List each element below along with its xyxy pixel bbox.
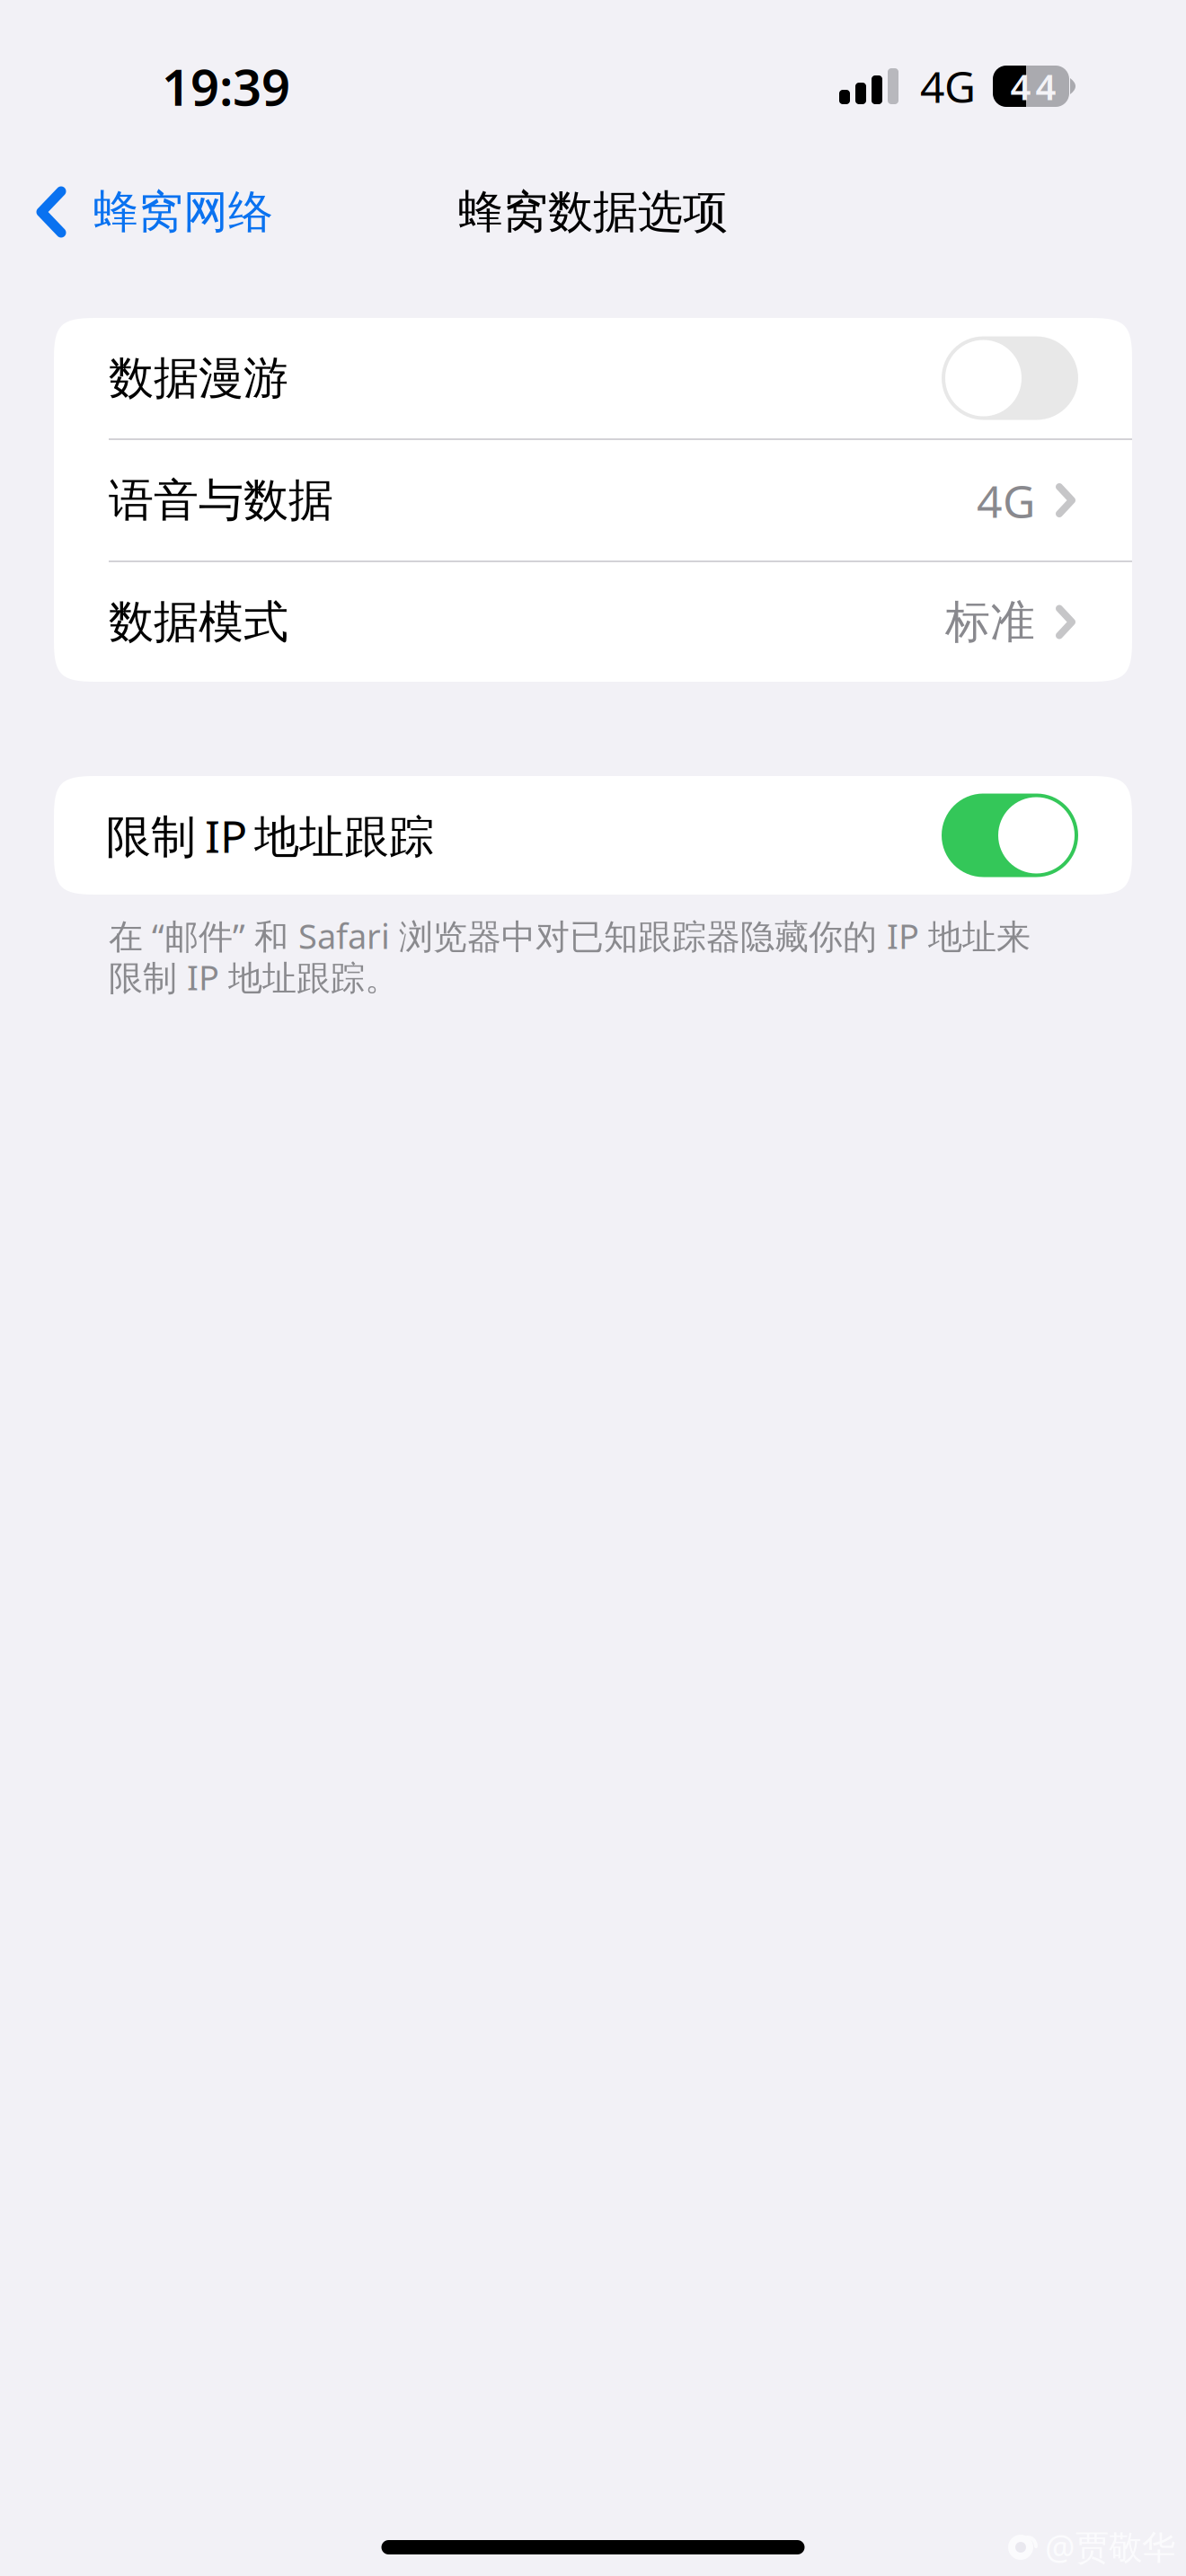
staticText: 4G bbox=[977, 470, 1035, 531]
button[interactable]: 语音与数据 bbox=[54, 440, 1132, 560]
staticText: 蜂窝数据选项 bbox=[458, 184, 728, 240]
staticText: 语音与数据 bbox=[109, 472, 333, 529]
staticText: 4G bbox=[920, 57, 976, 116]
staticText: 19:39 bbox=[162, 52, 290, 121]
button[interactable]: 限制 IP 地址跟踪 bbox=[54, 776, 1132, 895]
staticText: 限制 IP 地址跟踪。 bbox=[109, 954, 399, 1000]
staticText: 限制 IP 地址跟踪 bbox=[106, 805, 434, 866]
staticText: @贾敬华 bbox=[1045, 2524, 1175, 2569]
button[interactable]: 数据模式 bbox=[54, 562, 1132, 682]
staticText: 蜂窝网络 bbox=[93, 184, 273, 240]
staticText: 数据漫游 bbox=[109, 350, 288, 406]
button[interactable]: 蜂窝网络 bbox=[0, 163, 291, 261]
button[interactable]: 数据漫游 bbox=[54, 318, 1132, 438]
staticText: 标准 bbox=[945, 594, 1035, 650]
staticText: 数据模式 bbox=[109, 594, 288, 650]
staticText: 在 “邮件” 和 Safari 浏览器中对已知跟踪器隐藏你的 IP 地址来 bbox=[109, 913, 1031, 959]
staticText: 44 bbox=[1010, 62, 1056, 111]
